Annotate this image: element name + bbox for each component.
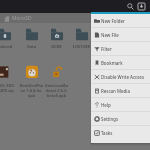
- button[interactable]: More options: [136, 1, 147, 12]
- button[interactable]: Rescan Media: [91, 84, 150, 98]
- button[interactable]: LOST.DIR: [69, 27, 94, 49]
- staticText: New Folder: [101, 18, 125, 24]
- staticText: New File: [101, 32, 119, 38]
- staticText: Disable Write Access: [101, 74, 145, 80]
- button[interactable]: MicroSD: [4, 15, 32, 22]
- staticText: ASUS_SDU PDATE.zip: [0, 83, 17, 93]
- button[interactable]: Search: [125, 1, 136, 12]
- button[interactable]: RootZenPho ne 1.4 & 6x. apk: [19, 65, 44, 98]
- button[interactable]: Bookmark: [91, 56, 150, 70]
- staticText: Settings: [101, 116, 119, 122]
- staticText: LOST.DIR: [69, 44, 94, 49]
- staticText: Tasks: [101, 130, 113, 136]
- staticText: DCIM: [44, 44, 69, 49]
- staticText: Rescan Media: [101, 88, 130, 94]
- staticText: Help: [101, 102, 111, 108]
- button[interactable]: New Folder: [91, 14, 150, 28]
- button[interactable]: Filter: [91, 42, 150, 56]
- button[interactable]: Data: [19, 27, 44, 49]
- button[interactable]: Tasks: [91, 126, 150, 140]
- button[interactable]: Settings: [91, 112, 150, 126]
- button[interactable]: Android: [0, 27, 17, 49]
- staticText: Data: [19, 44, 44, 49]
- staticText: Android: [0, 44, 17, 49]
- button[interactable]: Disable Write Access: [91, 70, 150, 84]
- button[interactable]: DCIM: [44, 27, 69, 49]
- staticText: MicroSD: [12, 15, 32, 22]
- button[interactable]: ASUS_SDU PDATE.zip: [0, 65, 17, 93]
- staticText: Filter: [101, 46, 112, 52]
- button[interactable]: New File: [91, 28, 150, 42]
- button[interactable]: Help: [91, 98, 150, 112]
- button[interactable]: UniversalAn droot-1.6.2- beta5.apk: [44, 65, 69, 98]
- staticText: UniversalAn droot-1.6.2- beta5.apk: [44, 83, 69, 98]
- staticText: RootZenPho ne 1.4 & 6x. apk: [19, 83, 44, 98]
- staticText: Bookmark: [101, 60, 123, 66]
